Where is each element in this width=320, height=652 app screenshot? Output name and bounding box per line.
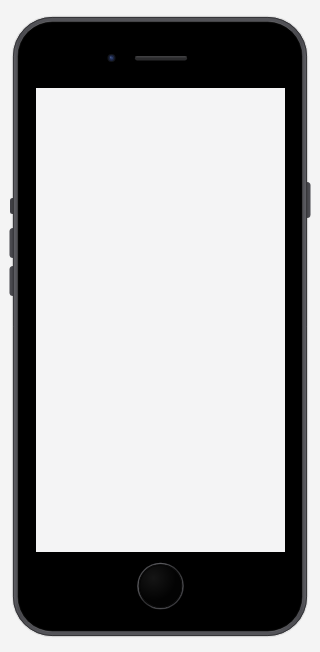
button[interactable]: iPhone device mockup (0, 0, 320, 652)
